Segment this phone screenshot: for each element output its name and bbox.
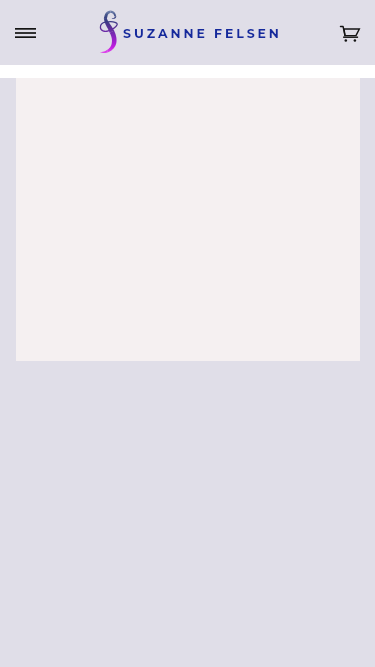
button[interactable]: Shopping cart bbox=[333, 16, 367, 50]
staticText: SUZANNE FELSEN bbox=[123, 26, 282, 41]
button[interactable]: SUZANNE FELSEN bbox=[100, 12, 282, 53]
button[interactable]: Open menu bbox=[8, 16, 42, 50]
